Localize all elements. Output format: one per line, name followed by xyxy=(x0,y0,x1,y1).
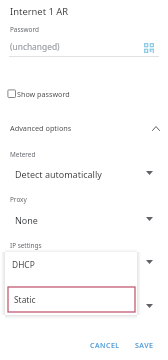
button[interactable]: DHCP xyxy=(5,252,137,284)
button[interactable]: Scan QR code xyxy=(141,40,157,56)
staticText: Detect automatically xyxy=(15,168,102,180)
button[interactable]: Static xyxy=(8,287,135,312)
staticText: Use randomized MAC xyxy=(15,301,106,313)
staticText: Static xyxy=(14,294,36,305)
staticText: Internet 1 AR xyxy=(10,5,69,18)
staticText: Proxy xyxy=(10,195,27,204)
staticText: Metered xyxy=(10,150,36,159)
staticText: DHCP xyxy=(12,259,35,270)
button[interactable]: CANCEL xyxy=(87,338,123,354)
staticText: Password xyxy=(10,25,39,34)
staticText: SAVE xyxy=(135,341,154,351)
staticText: Show password xyxy=(17,89,70,99)
button[interactable]: DHCP xyxy=(15,256,153,270)
staticText: DHCP xyxy=(15,257,40,269)
staticText: (unchanged) xyxy=(10,41,60,52)
staticText: None xyxy=(15,214,38,226)
staticText: IP settings xyxy=(10,241,42,250)
button[interactable]: Use randomized MAC xyxy=(15,300,153,314)
staticText: Privacy xyxy=(10,286,32,295)
button[interactable]: Detect automatically xyxy=(15,167,153,181)
button[interactable]: SAVE xyxy=(132,338,157,354)
staticText: CANCEL xyxy=(90,341,120,351)
button[interactable]: Show password xyxy=(7,86,99,101)
button[interactable]: None xyxy=(15,213,153,227)
button[interactable]: Advanced options xyxy=(10,120,160,136)
staticText: Advanced options xyxy=(10,123,72,133)
